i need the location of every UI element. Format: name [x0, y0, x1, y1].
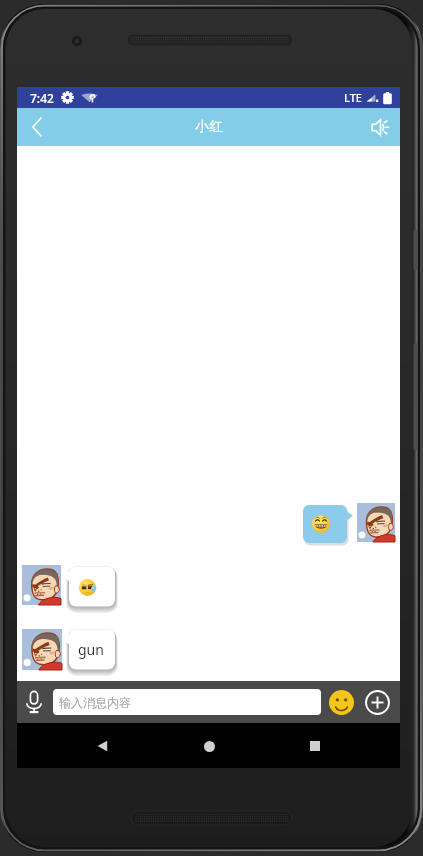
button[interactable]: Back	[80, 724, 124, 768]
button[interactable]	[63, 565, 115, 608]
button[interactable]: Volume	[360, 108, 400, 146]
button[interactable]: Home	[187, 724, 231, 768]
staticText: 输入消息内容	[59, 695, 131, 710]
button[interactable]: Voice input	[18, 681, 50, 723]
button[interactable]	[303, 505, 353, 544]
staticText: gun	[78, 640, 104, 659]
button[interactable]: 输入消息内容	[53, 689, 321, 715]
staticText: LTE	[344, 90, 362, 105]
button[interactable]: Recents	[293, 724, 337, 768]
staticText: 小红	[195, 118, 223, 136]
staticText: 7:42	[30, 90, 54, 106]
button[interactable]: Back	[17, 108, 57, 146]
button[interactable]: More	[363, 681, 391, 723]
button[interactable]: Avatar	[357, 503, 395, 542]
button[interactable]: Avatar	[22, 565, 61, 605]
button[interactable]: Emoji	[327, 681, 355, 723]
button[interactable]: Avatar	[22, 629, 62, 670]
button[interactable]: gun	[63, 628, 115, 671]
